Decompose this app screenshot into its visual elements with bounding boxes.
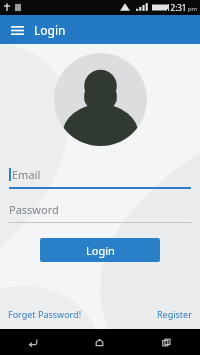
button[interactable]: Login	[40, 238, 160, 262]
button[interactable]: Back	[0, 329, 66, 355]
staticText: pm	[188, 5, 198, 13]
button[interactable]: Open navigation menu	[5, 18, 29, 42]
staticText: Login	[86, 243, 115, 258]
staticText: Login	[34, 22, 66, 38]
staticText: Email	[12, 167, 41, 182]
button[interactable]: Forget Password!	[8, 308, 82, 320]
button[interactable]: Password	[9, 202, 191, 223]
staticText: Forget Password!	[8, 308, 82, 320]
staticText: Password	[9, 202, 59, 217]
button[interactable]: Home	[66, 329, 133, 355]
button[interactable]: Register	[157, 308, 192, 320]
staticText: 12:31	[166, 2, 187, 13]
button[interactable]: Recent apps	[133, 329, 200, 355]
button[interactable]: Email	[9, 167, 191, 189]
staticText: Register	[157, 308, 192, 320]
